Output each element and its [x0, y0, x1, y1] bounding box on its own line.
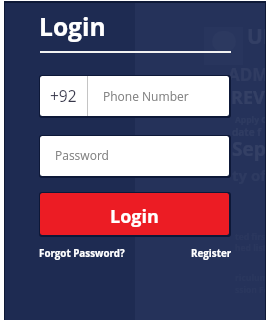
button[interactable]: Login: [40, 193, 229, 235]
staticText: Forgot Password?: [39, 247, 125, 260]
staticText: Login: [110, 204, 159, 229]
staticText: Login: [39, 10, 106, 44]
staticText: Password: [55, 147, 109, 163]
button[interactable]: Forgot Password?: [38, 243, 124, 261]
button[interactable]: +92: [40, 76, 229, 116]
staticText: Phone Number: [103, 88, 189, 104]
staticText: +92: [50, 85, 77, 106]
button[interactable]: Register: [190, 243, 231, 261]
button[interactable]: Password: [40, 136, 229, 176]
staticText: UNI: [247, 22, 265, 51]
staticText: date f: [232, 125, 262, 139]
staticText: ty of: [232, 165, 265, 185]
staticText: ADMI: [228, 63, 265, 86]
staticText: Register: [191, 247, 232, 260]
staticText: Apply Onlin: [235, 114, 265, 126]
staticText: REVIS: [231, 85, 265, 110]
staticText: Septemb: [232, 136, 265, 162]
